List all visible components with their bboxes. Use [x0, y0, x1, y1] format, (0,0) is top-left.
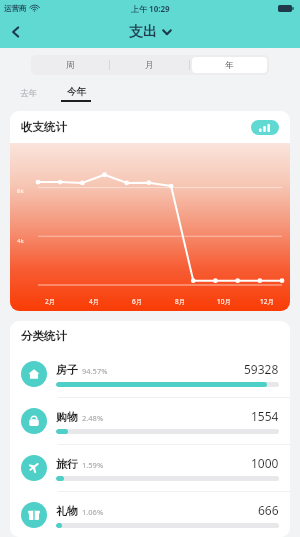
staticText: 旅行 — [56, 457, 78, 471]
staticText: 666 — [258, 502, 279, 518]
staticText: 1.06% — [82, 507, 104, 517]
button[interactable]: 周 — [33, 57, 107, 73]
staticText: 1.59% — [82, 460, 104, 470]
button[interactable]: 礼物 — [10, 492, 290, 537]
staticText: 6月 — [132, 297, 143, 306]
button[interactable]: Chart type — [251, 120, 279, 135]
button[interactable]: 购物 — [10, 398, 290, 444]
staticText: 59328 — [244, 361, 279, 377]
button[interactable]: 月 — [112, 57, 187, 73]
staticText: 礼物 — [56, 504, 78, 518]
staticText: 2.48% — [82, 413, 104, 423]
staticText: 1000 — [251, 455, 279, 471]
staticText: 月 — [145, 60, 154, 71]
staticText: 房子 — [56, 363, 78, 377]
staticText: 上午 10:29 — [131, 3, 170, 14]
staticText: 10月 — [217, 297, 231, 306]
staticText: 2月 — [45, 297, 56, 306]
button[interactable]: 房子 — [10, 351, 290, 397]
staticText: 购物 — [56, 410, 78, 424]
button[interactable]: 年 — [192, 57, 267, 73]
button[interactable]: Back — [0, 16, 32, 48]
staticText: 年 — [225, 60, 234, 71]
staticText: 8月 — [175, 297, 186, 306]
staticText: 8k — [17, 187, 24, 195]
staticText: 94.57% — [82, 366, 108, 376]
staticText: 4k — [17, 237, 24, 245]
button[interactable]: 支出 — [129, 23, 172, 41]
button[interactable]: 今年 — [57, 84, 95, 102]
staticText: 支出 — [129, 23, 157, 41]
button[interactable]: 去年 — [14, 85, 43, 102]
staticText: 今年 — [67, 86, 86, 98]
staticText: 去年 — [20, 88, 37, 99]
staticText: 分类统计 — [21, 329, 67, 343]
staticText: 1554 — [251, 408, 279, 424]
staticText: 周 — [66, 60, 75, 71]
button[interactable]: 旅行 — [10, 445, 290, 491]
staticText: 4月 — [89, 297, 100, 306]
staticText: 运营商 — [4, 4, 27, 13]
staticText: 12月 — [260, 297, 274, 306]
staticText: 收支统计 — [21, 120, 67, 134]
